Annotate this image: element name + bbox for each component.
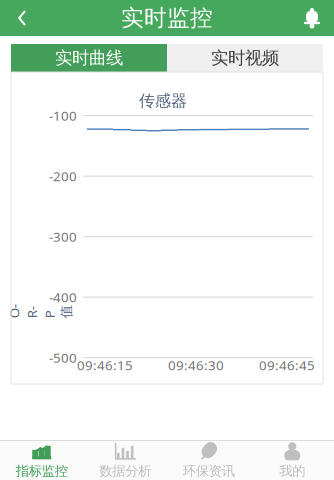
- staticText: 实时曲线: [55, 47, 123, 69]
- button[interactable]: Back: [0, 0, 44, 36]
- staticText: 09:46:15: [77, 356, 133, 374]
- staticText: 实时视频: [211, 47, 279, 69]
- staticText: -200: [49, 167, 77, 185]
- staticText: 环保资讯: [183, 463, 235, 479]
- button[interactable]: 实时视频: [167, 44, 323, 72]
- button[interactable]: 我的: [250, 440, 334, 480]
- button[interactable]: 数据分析: [83, 440, 167, 480]
- staticText: 09:46:45: [259, 356, 315, 374]
- staticText: -500: [49, 349, 77, 366]
- staticText: 传感器: [139, 91, 187, 111]
- button[interactable]: 环保资讯: [167, 440, 250, 480]
- staticText: 实时监控: [121, 4, 213, 32]
- staticText: 我的: [279, 463, 305, 479]
- staticText: -100: [49, 107, 77, 124]
- button[interactable]: 实时曲线: [11, 44, 167, 72]
- staticText: 09:46:30: [168, 356, 224, 374]
- staticText: -300: [49, 228, 77, 245]
- button[interactable]: Notifications: [290, 0, 334, 36]
- staticText: ORP值: [33, 276, 47, 346]
- staticText: 指标监控: [16, 463, 68, 479]
- staticText: -400: [49, 288, 77, 306]
- button[interactable]: 指标监控: [0, 440, 83, 480]
- staticText: 数据分析: [99, 463, 151, 479]
